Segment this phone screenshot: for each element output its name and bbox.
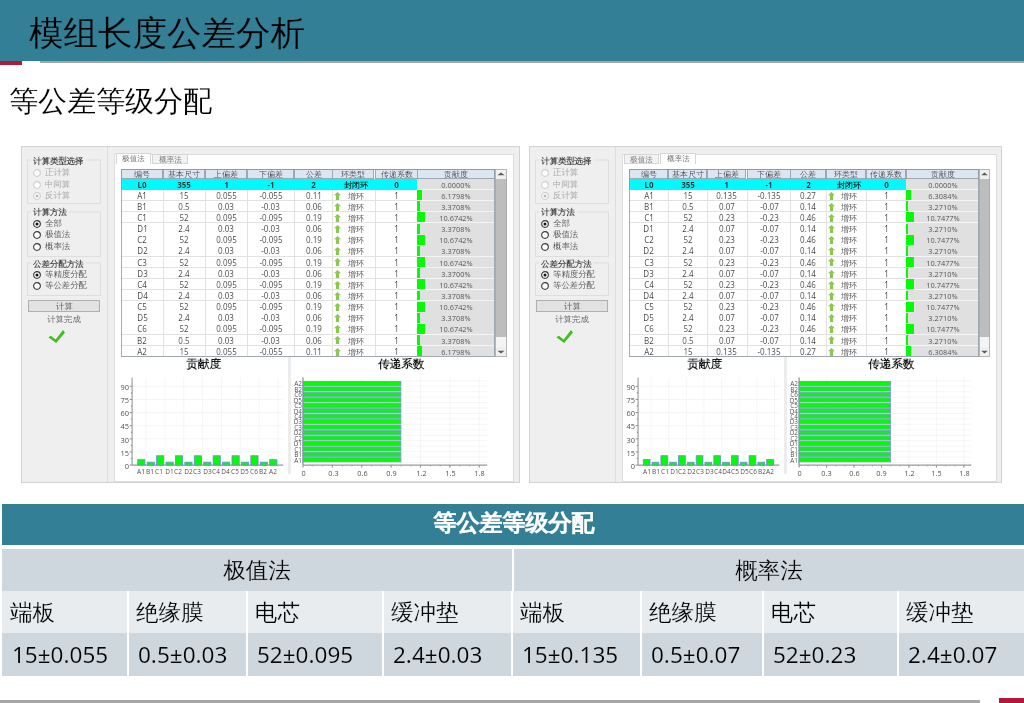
staticText: 模组长度公差分析 [29,12,305,55]
staticText: 增环 [348,280,364,290]
button[interactable]: 编号 [629,169,668,179]
button[interactable]: Scroll up [979,169,990,179]
button[interactable]: 0.5±0.03 [128,633,247,676]
button[interactable]: 贡献度 [417,169,495,179]
button[interactable]: 概率法 [152,154,188,164]
button[interactable]: 2.4±0.07 [898,633,1024,676]
button[interactable]: 环类型 [826,169,866,179]
button[interactable]: 概率法 [33,241,71,252]
staticText: 1 [884,301,889,312]
staticText: D4 [221,467,230,476]
button[interactable]: 等公差等级分配 [2,504,1024,545]
staticText: 1 [884,201,889,212]
button[interactable]: 正计算 [541,167,579,178]
button[interactable]: 中间算 [33,179,71,190]
button[interactable]: 编号 [121,169,163,179]
staticText: B1 [790,450,798,458]
staticText: D1 [293,439,302,447]
button[interactable]: Scroll down [495,347,507,357]
button[interactable]: 缓冲垫 [383,591,512,633]
button[interactable]: 端板 [512,591,641,633]
button[interactable]: 极值法 [2,549,512,591]
button[interactable]: 计算 [28,300,100,312]
staticText: C4 [137,279,147,290]
button[interactable]: 电芯 [763,591,899,633]
button[interactable]: 极值法 [33,229,71,240]
button[interactable]: 反计算 [33,190,71,201]
staticText: 增环 [841,258,857,268]
staticText: 传递系数 [381,169,413,179]
staticText: -0.03 [261,245,280,256]
button[interactable]: 概率法 [513,549,1024,591]
button[interactable]: 反计算 [541,190,579,201]
staticText: 3.2710% [928,269,958,279]
button[interactable]: 15±0.055 [2,633,128,676]
button[interactable]: Scroll up [495,169,507,179]
staticText: 0.5±0.07 [651,639,741,670]
button[interactable]: 等公差分配 [33,280,87,291]
button[interactable]: 传递系数 [866,169,906,179]
staticText: 2.4 [682,312,694,323]
button[interactable]: 公差 [294,169,333,179]
button[interactable]: 电芯 [247,591,384,633]
staticText: 0.07 [719,268,735,279]
button[interactable]: 传递系数 [375,169,418,179]
staticText: 0.5 [682,201,694,212]
staticText: 52 [179,279,189,290]
button[interactable]: 概率法 [541,241,579,252]
staticText: 环类型 [341,169,365,179]
button[interactable]: 基本尺寸 [668,169,707,179]
button[interactable]: 端板 [2,591,128,633]
staticText: 1 [394,335,399,346]
staticText: 封闭环 [837,180,861,190]
button[interactable]: 等公差分配 [541,280,595,291]
staticText: 反计算 [553,190,579,201]
staticText: -0.03 [261,223,280,234]
button[interactable]: 15±0.135 [512,633,641,676]
button[interactable]: 公差 [790,169,826,179]
staticText: 计算完成 [47,314,81,324]
button[interactable]: 极值法 [624,154,659,164]
button[interactable]: 概率法 [660,153,696,164]
button[interactable]: 中间算 [541,179,579,190]
button[interactable]: 贡献度 [906,169,979,179]
staticText: 基本尺寸 [168,169,200,179]
staticText: 45 [120,421,129,430]
button[interactable]: 全部 [541,218,570,229]
button[interactable]: 环类型 [332,169,374,179]
staticText: C1 [644,212,654,223]
staticText: 增环 [841,224,857,234]
button[interactable]: 52±0.23 [763,633,899,676]
button[interactable]: 上偏差 [707,169,746,179]
button[interactable]: 绝缘膜 [128,591,247,633]
button[interactable]: 52±0.095 [247,633,384,676]
staticText: 52 [683,257,693,268]
staticText: 上偏差 [214,169,238,179]
staticText: A1 [294,456,302,464]
button[interactable]: 上偏差 [205,169,247,179]
button[interactable]: 下偏差 [747,169,791,179]
staticText: 0.06 [306,312,322,323]
button[interactable]: 2.4±0.03 [383,633,512,676]
staticText: 0.19 [306,212,322,223]
button[interactable]: 极值法 [116,153,151,164]
button[interactable]: 极值法 [541,229,579,240]
button[interactable]: 0.5±0.07 [641,633,763,676]
staticText: 电芯 [255,598,300,626]
staticText: 全部 [553,218,570,229]
button[interactable]: 等精度分配 [541,269,595,280]
button[interactable]: 下偏差 [247,169,294,179]
button[interactable]: 缓冲垫 [898,591,1024,633]
button[interactable]: 基本尺寸 [163,169,205,179]
staticText: -0.095 [259,301,283,312]
staticText: 52 [179,234,189,245]
button[interactable]: 全部 [33,218,62,229]
button[interactable]: 等精度分配 [33,269,87,280]
staticText: 0.03 [218,290,234,301]
button[interactable]: 绝缘膜 [641,591,763,633]
button[interactable]: 正计算 [33,167,71,178]
staticText: 公差 [800,169,816,179]
button[interactable]: 计算 [536,300,608,312]
button[interactable]: Scroll down [979,347,990,357]
staticText: 1 [394,279,399,290]
